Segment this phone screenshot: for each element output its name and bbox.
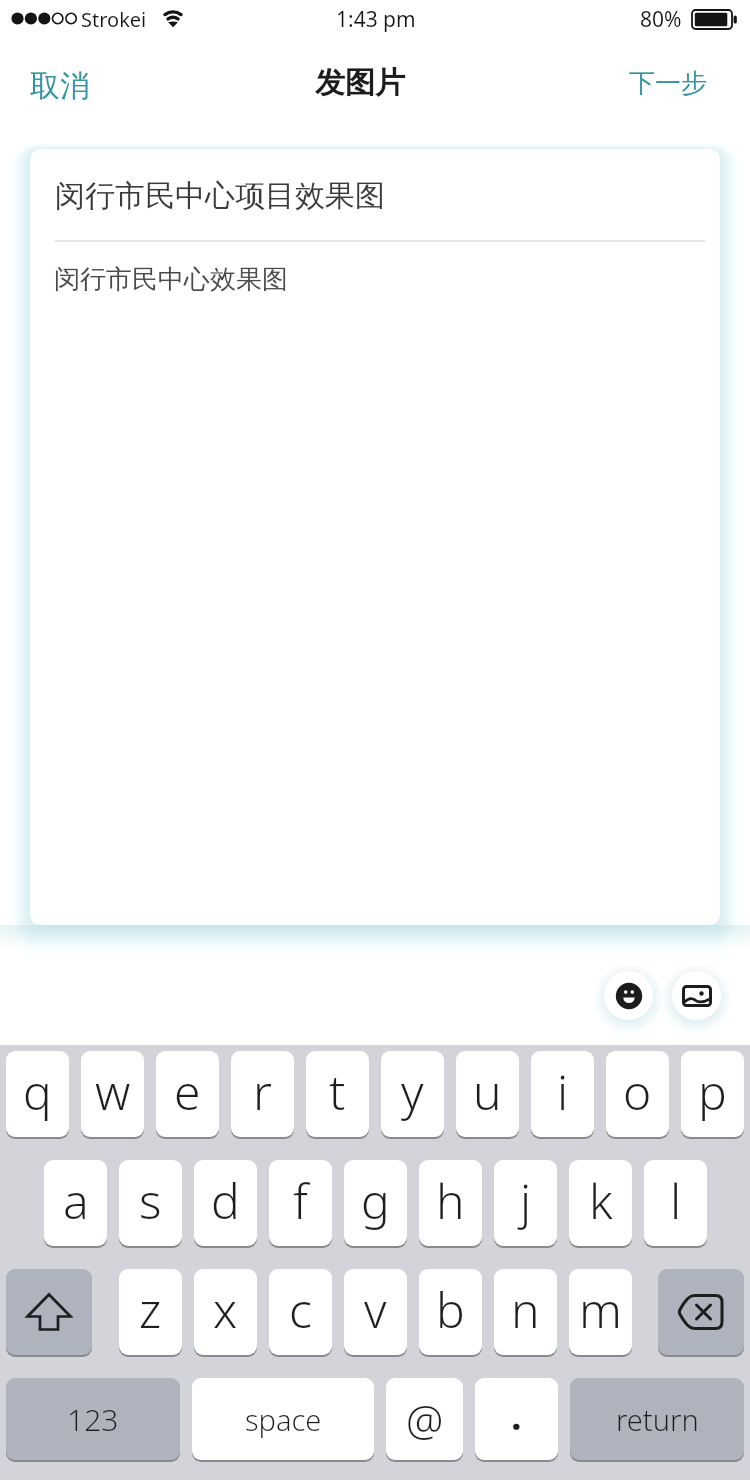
- staticText: b: [436, 1277, 465, 1342]
- staticText: x: [213, 1277, 238, 1342]
- staticText: y: [401, 1059, 424, 1124]
- staticText: @: [406, 1391, 444, 1448]
- staticText: 123: [67, 1399, 119, 1440]
- staticText: w: [95, 1059, 131, 1124]
- button[interactable]: n: [494, 1269, 557, 1355]
- button[interactable]: return: [570, 1378, 744, 1460]
- staticText: u: [473, 1059, 502, 1124]
- staticText: 取消: [30, 67, 90, 105]
- staticText: c: [289, 1277, 312, 1342]
- staticText: g: [361, 1168, 390, 1233]
- staticText: a: [63, 1168, 89, 1233]
- button[interactable]: j: [494, 1160, 557, 1246]
- button[interactable]: o: [606, 1051, 669, 1137]
- button[interactable]: a: [44, 1160, 107, 1246]
- staticText: s: [139, 1168, 162, 1233]
- staticText: i: [557, 1059, 569, 1124]
- button[interactable]: s: [119, 1160, 182, 1246]
- button[interactable]: v: [344, 1269, 407, 1355]
- button[interactable]: space: [192, 1378, 374, 1460]
- staticText: .: [511, 1389, 522, 1441]
- button[interactable]: i: [531, 1051, 594, 1137]
- button[interactable]: r: [231, 1051, 294, 1137]
- staticText: q: [23, 1059, 52, 1124]
- staticText: Strokei: [81, 6, 147, 33]
- staticText: l: [670, 1168, 682, 1233]
- staticText: 1:43 pm: [336, 5, 416, 34]
- staticText: m: [579, 1277, 622, 1342]
- button[interactable]: b: [419, 1269, 482, 1355]
- staticText: o: [623, 1059, 652, 1124]
- button[interactable]: .: [475, 1378, 558, 1460]
- button[interactable]: h: [419, 1160, 482, 1246]
- staticText: space: [245, 1400, 322, 1439]
- button[interactable]: 123: [6, 1378, 180, 1460]
- staticText: 下一步: [629, 67, 707, 100]
- staticText: v: [364, 1277, 387, 1342]
- staticText: 发图片: [315, 64, 405, 102]
- staticText: n: [511, 1277, 540, 1342]
- staticText: 80%: [640, 5, 682, 34]
- button[interactable]: k: [569, 1160, 632, 1246]
- staticText: p: [698, 1059, 727, 1124]
- button[interactable]: @: [386, 1378, 463, 1460]
- button[interactable]: y: [381, 1051, 444, 1137]
- staticText: j: [520, 1168, 532, 1233]
- staticText: e: [174, 1059, 201, 1124]
- button[interactable]: e: [156, 1051, 219, 1137]
- staticText: f: [293, 1168, 308, 1233]
- button[interactable]: p: [681, 1051, 744, 1137]
- button[interactable]: c: [269, 1269, 332, 1355]
- button[interactable]: q: [6, 1051, 69, 1137]
- button[interactable]: z: [119, 1269, 182, 1355]
- staticText: return: [616, 1400, 699, 1439]
- staticText: z: [139, 1277, 162, 1342]
- button[interactable]: w: [81, 1051, 144, 1137]
- button[interactable]: m: [569, 1269, 632, 1355]
- button[interactable]: t: [306, 1051, 369, 1137]
- button[interactable]: f: [269, 1160, 332, 1246]
- staticText: h: [436, 1168, 465, 1233]
- button[interactable]: u: [456, 1051, 519, 1137]
- button[interactable]: l: [644, 1160, 707, 1246]
- staticText: 闵行市民中心项目效果图: [55, 177, 385, 215]
- staticText: t: [329, 1059, 346, 1124]
- staticText: r: [253, 1059, 272, 1124]
- button[interactable]: 下一步: [619, 60, 697, 93]
- staticText: k: [589, 1168, 613, 1233]
- button[interactable]: d: [194, 1160, 257, 1246]
- staticText: d: [211, 1168, 240, 1233]
- button[interactable]: [604, 971, 653, 1020]
- button[interactable]: 取消: [20, 60, 80, 98]
- button[interactable]: [672, 971, 721, 1020]
- button[interactable]: g: [344, 1160, 407, 1246]
- staticText: 闵行市民中心效果图: [54, 263, 288, 296]
- button[interactable]: [6, 1269, 92, 1355]
- button[interactable]: [658, 1269, 744, 1355]
- button[interactable]: x: [194, 1269, 257, 1355]
